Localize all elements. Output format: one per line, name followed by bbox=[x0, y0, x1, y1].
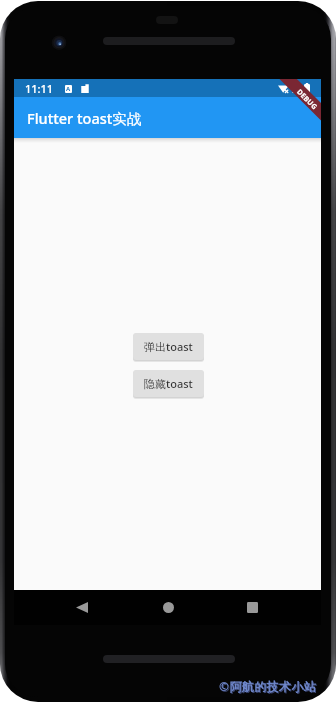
staticText: ©阿航的技术小站 bbox=[220, 679, 318, 695]
staticText: Flutter toast实战 bbox=[27, 108, 142, 128]
staticText: A bbox=[66, 85, 71, 93]
staticText: ©阿航的技术小站 bbox=[219, 678, 317, 694]
staticText: 弹出toast bbox=[144, 339, 193, 354]
button[interactable]: Recent apps bbox=[238, 590, 266, 625]
staticText: DEBUG bbox=[294, 87, 320, 113]
staticText: 11:11 bbox=[25, 81, 54, 96]
button[interactable]: Home bbox=[154, 590, 182, 625]
button[interactable]: 弹出toast bbox=[133, 333, 204, 360]
staticText: 隐藏toast bbox=[144, 376, 193, 391]
button[interactable]: 隐藏toast bbox=[133, 370, 204, 397]
button[interactable]: Back bbox=[68, 590, 96, 625]
